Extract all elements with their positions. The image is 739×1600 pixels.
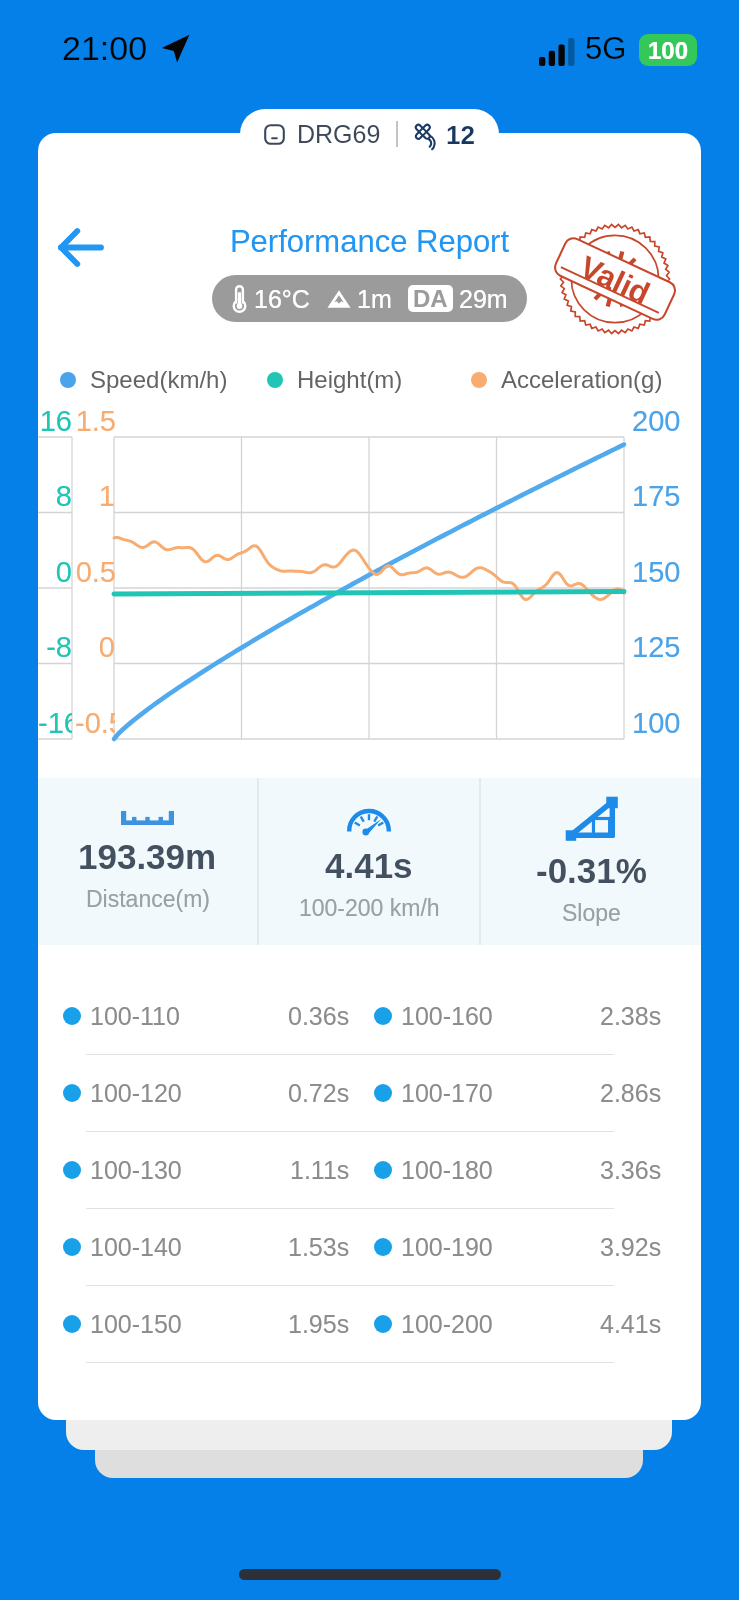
staticText: 0.5 — [75, 556, 115, 588]
staticText: 100-190 — [401, 1233, 493, 1261]
staticText: 100-200 — [401, 1310, 493, 1338]
staticText: 0.36s — [288, 1002, 350, 1030]
staticText: Speed(km/h) — [90, 366, 228, 393]
staticText: 100-130 — [90, 1156, 182, 1184]
staticText: 100-120 — [90, 1079, 182, 1107]
button[interactable]: 100-180 — [374, 1156, 662, 1184]
button[interactable]: 100-120 — [63, 1079, 350, 1107]
staticText: 29m — [459, 285, 508, 313]
button[interactable]: 100-160 — [374, 1002, 662, 1030]
staticText: 4.41s — [600, 1310, 662, 1338]
button[interactable]: 4.41s — [259, 778, 479, 945]
staticText: Slope — [562, 900, 621, 926]
staticText: Distance(m) — [86, 886, 210, 912]
button[interactable]: -0.31% — [481, 778, 701, 945]
staticText: 1.5 — [75, 405, 115, 437]
staticText: 1 — [75, 480, 115, 512]
staticText: 193.39m — [78, 837, 217, 876]
staticText: 125 — [632, 631, 681, 663]
staticText: -0.5 — [75, 707, 115, 739]
staticText: 16 — [38, 405, 72, 437]
staticText: -8 — [38, 631, 72, 663]
staticText: 100 — [632, 707, 681, 739]
button[interactable]: 100-110 — [63, 1002, 350, 1030]
button[interactable]: 100-130 — [63, 1156, 350, 1184]
staticText: 100-150 — [90, 1310, 182, 1338]
staticText: 0 — [75, 631, 115, 663]
staticText: 100-140 — [90, 1233, 182, 1261]
staticText: Valid — [575, 249, 656, 312]
staticText: Acceleration(g) — [501, 366, 663, 393]
staticText: 4.41s — [325, 846, 413, 885]
staticText: 2.38s — [600, 1002, 662, 1030]
staticText: 100-160 — [401, 1002, 493, 1030]
staticText: Performance Report — [38, 224, 701, 259]
staticText: 100-110 — [90, 1002, 180, 1030]
staticText: DA — [413, 285, 448, 312]
button[interactable]: 100-170 — [374, 1079, 662, 1107]
button[interactable]: 193.39m — [38, 778, 257, 945]
button[interactable]: DRG69 — [240, 109, 499, 159]
button[interactable]: 100-200 — [374, 1310, 662, 1338]
staticText: 100-180 — [401, 1156, 493, 1184]
staticText: 150 — [632, 556, 681, 588]
staticText: 5G — [585, 31, 627, 66]
button[interactable]: 100-140 — [63, 1233, 350, 1261]
staticText: 8 — [38, 480, 72, 512]
staticText: 200 — [632, 405, 681, 437]
button[interactable]: 100-150 — [63, 1310, 350, 1338]
staticText: 0 — [38, 556, 72, 588]
button[interactable]: 16°C — [212, 275, 527, 322]
staticText: 3.92s — [600, 1233, 662, 1261]
button[interactable]: 100-190 — [374, 1233, 662, 1261]
staticText: 1.11s — [290, 1156, 350, 1184]
staticText: 0.72s — [288, 1079, 350, 1107]
staticText: 1.95s — [288, 1310, 350, 1338]
staticText: 2.86s — [600, 1079, 662, 1107]
button[interactable]: Back — [45, 211, 117, 283]
staticText: Height(m) — [297, 366, 403, 393]
staticText: 175 — [632, 480, 681, 512]
staticText: 12 — [446, 120, 475, 149]
staticText: -16 — [38, 707, 72, 739]
staticText: 16°C — [254, 285, 310, 313]
staticText: 1m — [357, 285, 392, 313]
staticText: -0.31% — [536, 851, 647, 890]
staticText: 21:00 — [62, 29, 148, 67]
staticText: 1.53s — [288, 1233, 350, 1261]
staticText: 100-170 — [401, 1079, 493, 1107]
staticText: DRG69 — [297, 120, 381, 148]
staticText: 3.36s — [600, 1156, 662, 1184]
staticText: 100 — [648, 37, 689, 64]
staticText: 100-200 km/h — [299, 895, 440, 921]
